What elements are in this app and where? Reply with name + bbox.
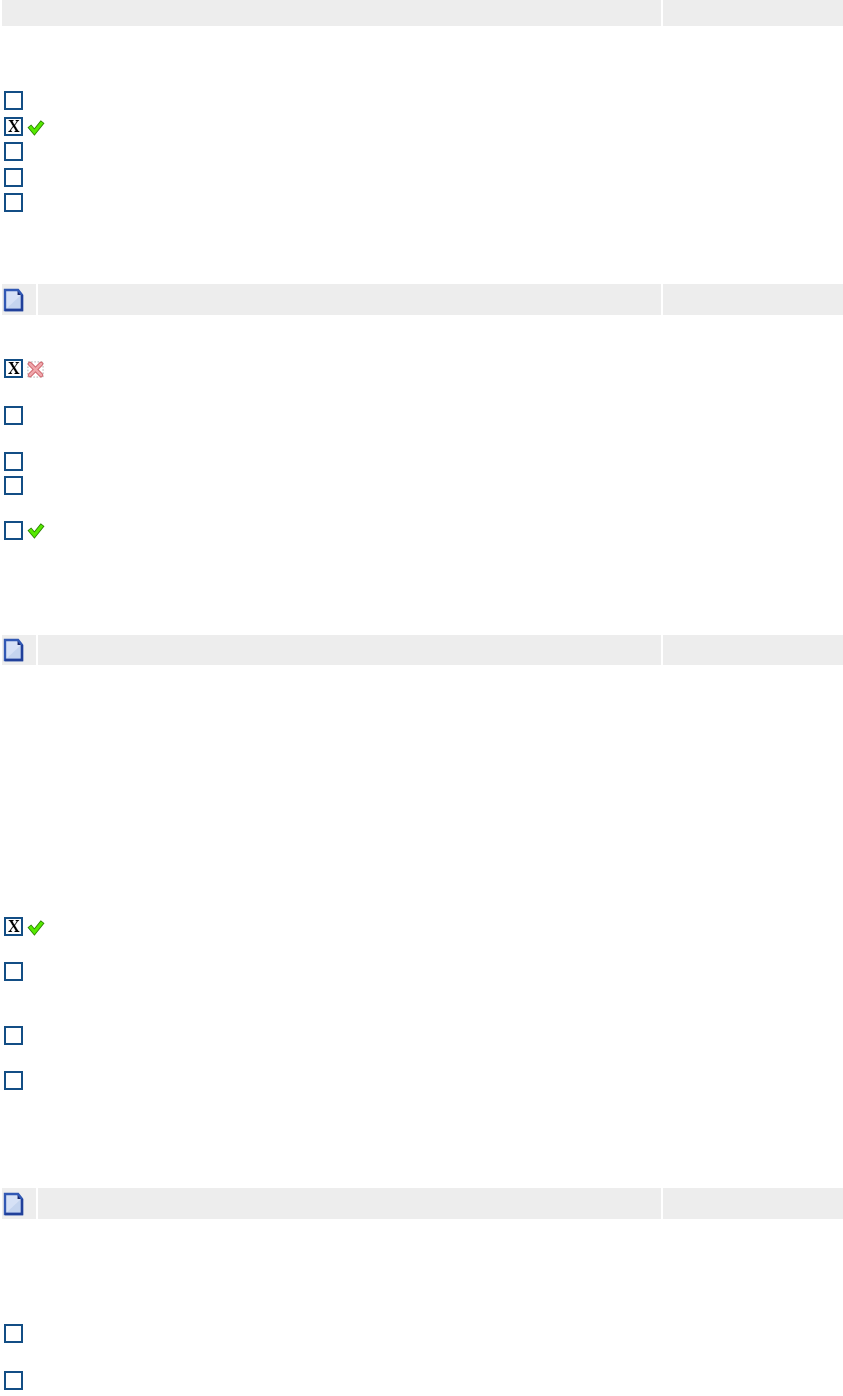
button[interactable]: Unchecked option [4, 168, 23, 187]
button[interactable]: Unchecked option [4, 1371, 23, 1390]
button[interactable]: Document [2, 284, 843, 315]
button[interactable]: Document [2, 1188, 843, 1219]
button[interactable]: Unchecked option [4, 1026, 23, 1045]
button[interactable]: Unchecked option [4, 1324, 23, 1343]
button[interactable]: Unchecked option [4, 91, 23, 110]
button[interactable]: Unchecked option [4, 521, 23, 540]
button[interactable]: Unchecked option [4, 1071, 23, 1090]
other: Document [4, 639, 23, 661]
button[interactable]: Unchecked option [4, 142, 23, 161]
button[interactable]: Unchecked option [4, 452, 23, 471]
button[interactable]: Unchecked option [4, 406, 23, 425]
other: Document [4, 1193, 23, 1215]
staticText: X [8, 357, 20, 376]
button[interactable]: Passed [28, 523, 44, 538]
button[interactable]: Document [2, 635, 843, 665]
button[interactable]: Passed [28, 120, 44, 135]
staticText: X [8, 915, 20, 934]
button[interactable]: Unchecked option [4, 476, 23, 495]
button[interactable]: Checked option [4, 917, 23, 936]
button[interactable]: Unchecked option [4, 193, 23, 212]
button[interactable]: Checked option [4, 117, 23, 136]
button[interactable]: Failed [27, 361, 44, 378]
staticText: X [8, 115, 20, 134]
button[interactable]: Passed [28, 920, 44, 935]
other: Document [4, 289, 23, 311]
button[interactable]: Unchecked option [4, 962, 23, 981]
button[interactable]: Checked option [4, 359, 23, 378]
